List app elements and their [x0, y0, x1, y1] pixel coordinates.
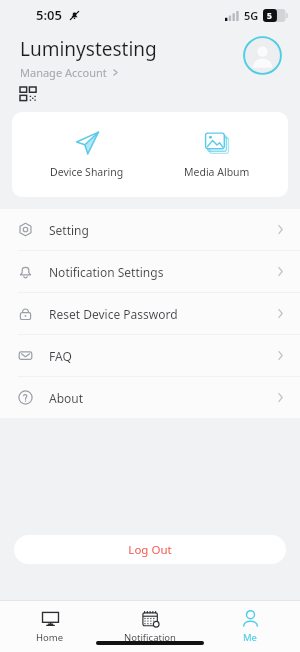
staticText: Log Out [128, 542, 172, 558]
button[interactable]: Notification Settings [0, 251, 300, 293]
button[interactable]: About [0, 377, 300, 418]
button[interactable]: FAQ [0, 335, 300, 377]
button[interactable]: Media Album [162, 128, 272, 181]
staticText: 5:05 [36, 6, 62, 24]
staticText: 5 [267, 10, 272, 22]
staticText: Manage Account [20, 65, 107, 80]
staticText: Media Album [184, 165, 250, 179]
staticText: Home [36, 631, 64, 644]
staticText: Notification [124, 631, 176, 644]
button[interactable]: Profile avatar [243, 36, 282, 75]
staticText: Setting [49, 222, 277, 238]
button[interactable]: Scan QR code [20, 87, 37, 104]
button[interactable]: Home [0, 601, 100, 652]
staticText: 5G [244, 8, 259, 23]
button[interactable]: Notification [100, 601, 200, 652]
staticText: Luminystesting [20, 36, 157, 62]
button[interactable]: Log Out [14, 535, 286, 564]
button[interactable]: Reset Device Password [0, 293, 300, 335]
button[interactable]: Me [200, 601, 300, 652]
button[interactable]: Manage Account [20, 65, 119, 80]
staticText: Notification Settings [49, 264, 277, 280]
staticText: Me [243, 631, 257, 644]
button[interactable]: Setting [0, 209, 300, 251]
button[interactable]: Device Sharing [28, 128, 146, 181]
staticText: Device Sharing [50, 165, 124, 179]
staticText: Reset Device Password [49, 306, 277, 322]
staticText: About [49, 390, 277, 406]
staticText: FAQ [49, 348, 277, 364]
